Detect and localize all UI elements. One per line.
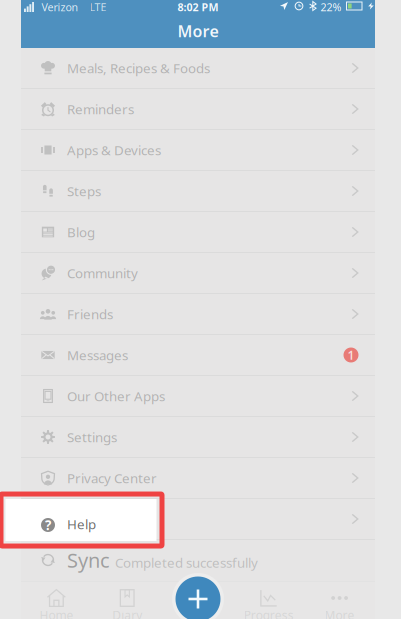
staticText: More <box>177 20 218 42</box>
staticText: Settings <box>67 428 117 446</box>
staticText: Home <box>39 607 73 619</box>
staticText: LTE <box>89 0 106 14</box>
staticText: ? <box>45 510 51 528</box>
staticText: Sync <box>67 547 110 573</box>
staticText: Meals, Recipes & Foods <box>67 59 210 77</box>
button[interactable]: Diary <box>92 581 163 619</box>
staticText: More <box>325 607 355 619</box>
staticText: ? <box>45 516 51 534</box>
staticText: Completed successfully <box>115 554 258 571</box>
staticText: Friends <box>67 305 113 323</box>
button[interactable]: Friends <box>21 294 375 335</box>
staticText: 1 <box>347 347 354 363</box>
button[interactable]: ? <box>21 499 375 540</box>
button[interactable]: Home <box>21 581 92 619</box>
staticText: Help <box>67 510 96 528</box>
button[interactable]: Steps <box>21 171 375 212</box>
staticText: Help <box>67 515 96 533</box>
button[interactable]: Apps & Devices <box>21 130 375 171</box>
staticText: Community <box>67 264 138 282</box>
staticText: Steps <box>67 182 101 200</box>
staticText: Our Other Apps <box>67 387 165 405</box>
staticText: 8:02 PM <box>177 0 218 14</box>
staticText: 22% <box>320 0 341 14</box>
button[interactable]: Blog <box>21 212 375 253</box>
button[interactable]: Add <box>175 576 220 619</box>
button[interactable]: Community <box>21 253 375 294</box>
staticText: Blog <box>67 223 95 241</box>
staticText: Messages <box>67 346 128 364</box>
button[interactable]: Our Other Apps <box>21 376 375 417</box>
button[interactable]: More <box>304 581 375 619</box>
button[interactable]: Settings <box>21 417 375 458</box>
button[interactable]: Reminders <box>21 89 375 130</box>
button[interactable]: Meals, Recipes & Foods <box>21 48 375 89</box>
staticText: Privacy Center <box>67 469 157 487</box>
staticText: Reminders <box>67 100 134 118</box>
staticText: Apps & Devices <box>67 141 161 159</box>
button[interactable]: Messages <box>21 335 375 376</box>
staticText: Diary <box>112 607 142 619</box>
staticText: Progress <box>244 607 294 619</box>
button[interactable]: Progress <box>233 581 304 619</box>
button[interactable]: Privacy Center <box>21 458 375 499</box>
button[interactable]: Sync <box>21 540 375 581</box>
staticText: Verizon <box>41 0 78 14</box>
